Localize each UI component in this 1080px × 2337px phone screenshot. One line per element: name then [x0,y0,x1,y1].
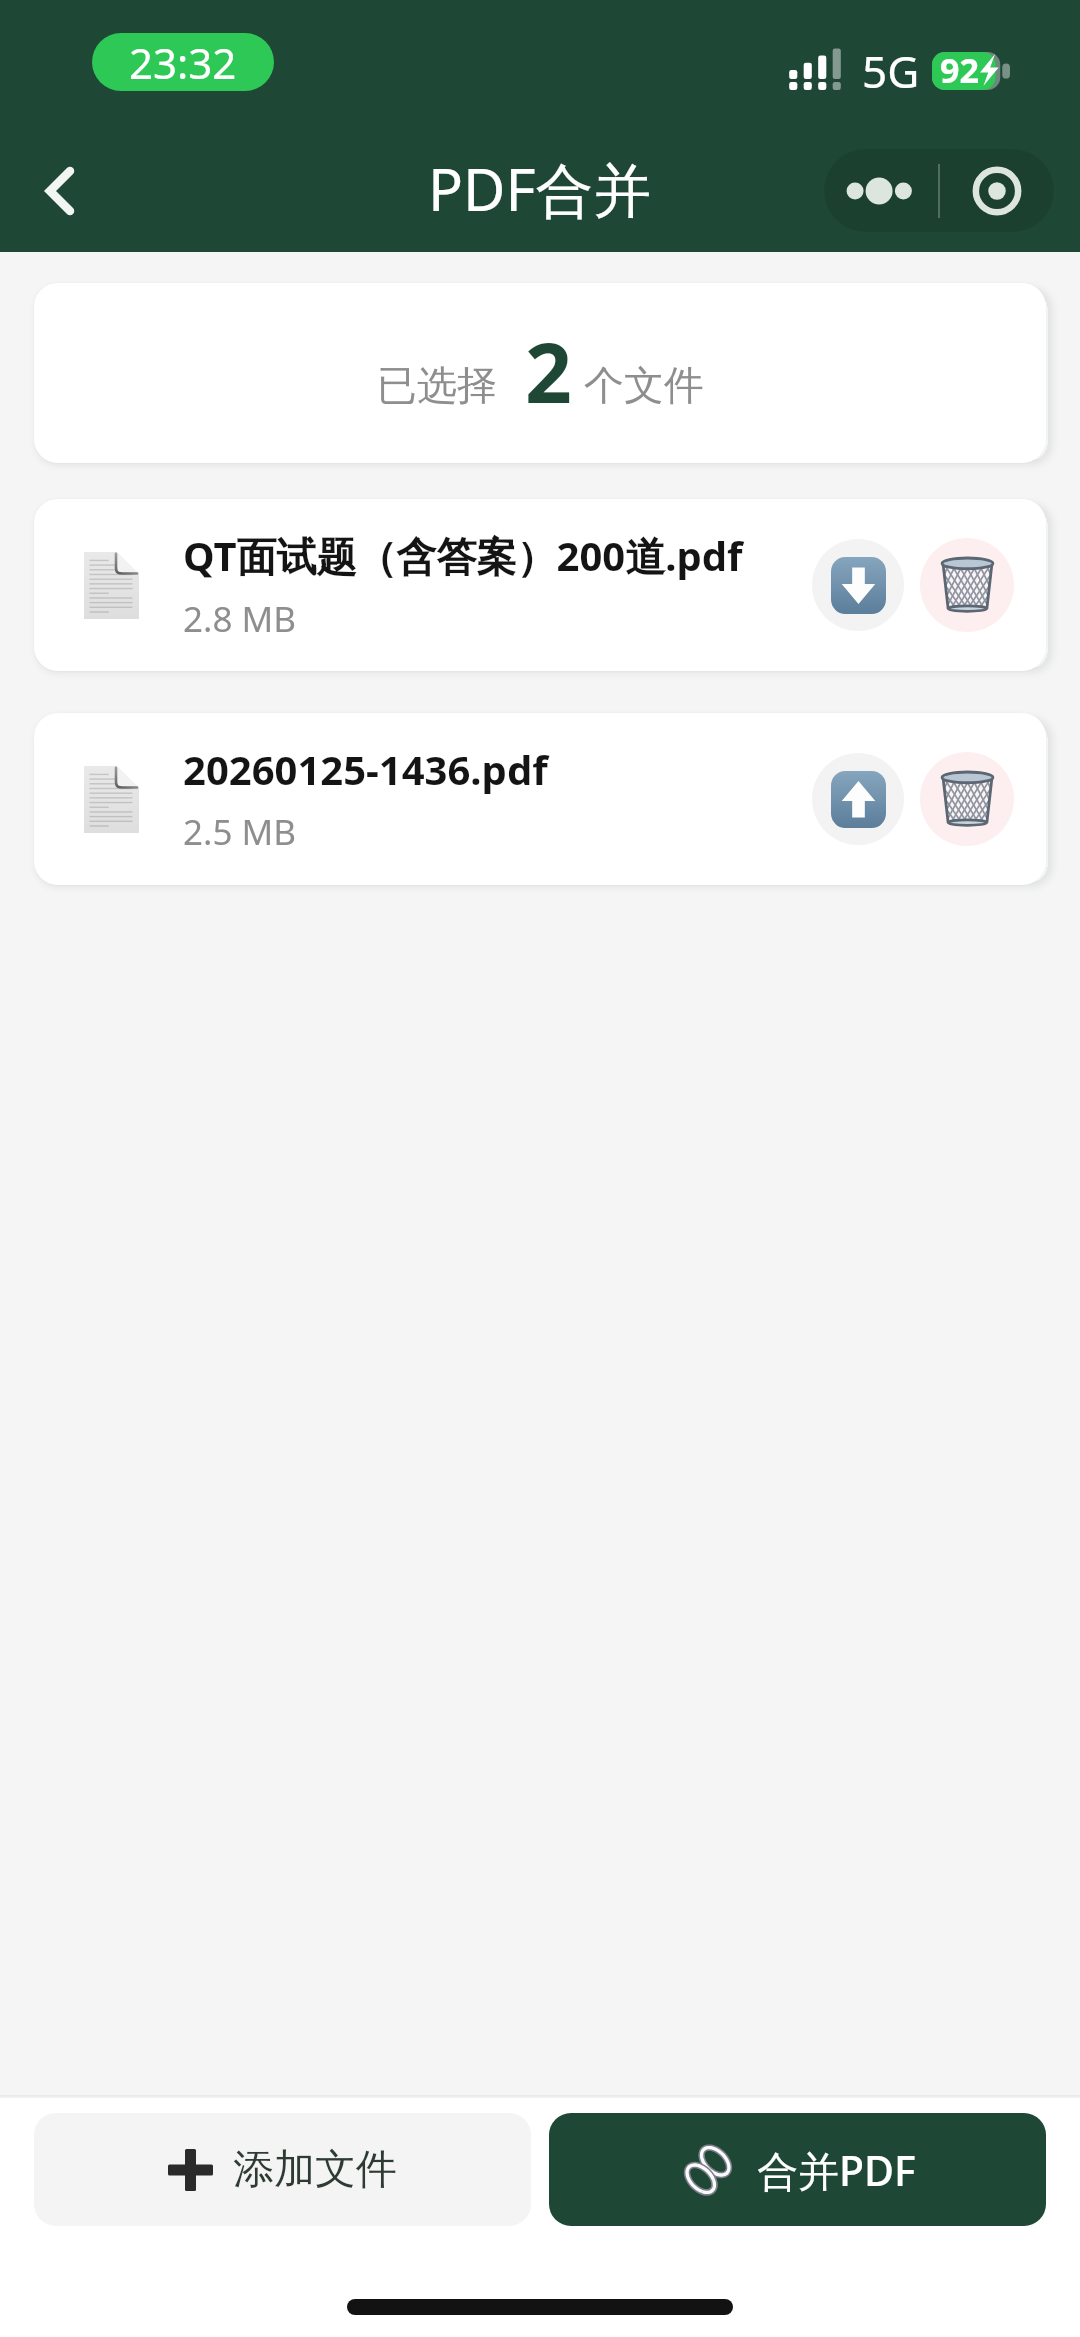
button[interactable]: Move down [812,539,904,631]
button[interactable]: More [824,149,938,232]
staticText: 已选择 [377,360,497,410]
staticText: 92 [940,47,979,93]
staticText: 个文件 [584,360,704,410]
staticText: 添加文件 [233,2144,397,2196]
button[interactable]: QT面试题（含答案）200道.pdf [34,499,1046,671]
staticText: 2 [525,315,572,427]
button[interactable]: Back [17,148,103,234]
staticText: PDF合并 [428,149,652,228]
button[interactable]: Move up [812,753,904,845]
button[interactable]: 20260125-1436.pdf [34,713,1046,885]
staticText: QT面试题（含答案）200道.pdf [183,528,743,583]
button[interactable]: 合并PDF [549,2113,1046,2226]
staticText: 合并PDF [757,2142,916,2198]
staticText: 2.8 MB [183,595,297,643]
staticText: 20260125-1436.pdf [183,742,548,796]
staticText: 2.5 MB [183,808,297,856]
staticText: 5G [862,41,920,101]
staticText: 23:32 [129,34,237,91]
button[interactable]: 添加文件 [34,2113,531,2226]
button[interactable]: Delete [920,752,1014,846]
button[interactable]: Delete [920,538,1014,632]
button[interactable]: Close mini program [940,149,1054,232]
